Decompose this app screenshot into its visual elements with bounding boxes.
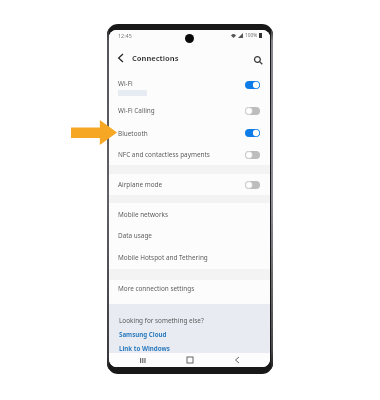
- staticText: Bluetooth: [118, 129, 245, 138]
- staticText: 100%: [245, 32, 258, 39]
- staticText: Mobile Hotspot and Tethering: [118, 253, 260, 262]
- other: Pointer: [71, 120, 117, 145]
- button[interactable]: Turn off: [245, 129, 260, 137]
- button[interactable]: Bluetooth: [109, 122, 270, 144]
- button[interactable]: Turn off: [245, 81, 260, 89]
- button[interactable]: Mobile networks: [109, 203, 270, 225]
- staticText: Mobile networks: [118, 210, 260, 219]
- button[interactable]: More connection settings: [109, 280, 270, 297]
- button[interactable]: Turn on: [245, 107, 260, 115]
- button[interactable]: Link to Windows: [119, 344, 170, 352]
- staticText: Connections: [132, 53, 179, 63]
- button[interactable]: Samsung Cloud: [119, 330, 167, 338]
- button[interactable]: Turn on: [245, 151, 260, 159]
- button[interactable]: Search: [248, 45, 270, 70]
- button[interactable]: Recent apps: [119, 353, 166, 367]
- staticText: Data usage: [118, 231, 260, 240]
- button[interactable]: Turn on: [245, 181, 260, 189]
- button[interactable]: Airplane mode: [109, 174, 270, 195]
- staticText: Wi-Fi: [118, 79, 133, 88]
- button[interactable]: Wi-Fi Calling: [109, 99, 270, 122]
- staticText: More connection settings: [118, 284, 260, 293]
- staticText: 12:45: [118, 32, 132, 39]
- button[interactable]: Mobile Hotspot and Tethering: [109, 246, 270, 269]
- button[interactable]: NFC and contactless payments: [109, 144, 270, 165]
- button[interactable]: Data usage: [109, 225, 270, 246]
- button[interactable]: Wi-Fi: [109, 70, 270, 99]
- button[interactable]: Home: [166, 353, 213, 367]
- staticText: NFC and contactless payments: [118, 150, 245, 159]
- button[interactable]: Navigate up: [109, 45, 132, 70]
- button[interactable]: Back: [213, 353, 260, 367]
- staticText: Airplane mode: [118, 180, 245, 189]
- staticText: Looking for something else?: [119, 316, 204, 325]
- staticText: Wi-Fi Calling: [118, 106, 245, 115]
